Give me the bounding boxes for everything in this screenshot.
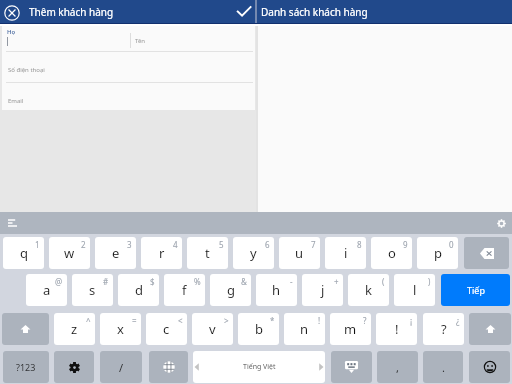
staticText: Danh sách khách hàng	[261, 5, 368, 19]
button[interactable]: Shift	[2, 313, 49, 345]
staticText: Thêm khách hàng	[29, 5, 114, 19]
staticText: l	[413, 281, 417, 299]
button[interactable]: g	[210, 274, 251, 306]
staticText: .	[442, 360, 445, 375]
button[interactable]: u	[279, 237, 320, 269]
button[interactable]: x	[100, 313, 141, 345]
button[interactable]: Clipboard	[2, 212, 24, 234]
button[interactable]: Save	[233, 1, 254, 22]
button[interactable]: Symbols	[3, 351, 49, 383]
staticText: ?	[441, 320, 447, 338]
button[interactable]: c	[146, 313, 187, 345]
button[interactable]: f	[164, 274, 205, 306]
staticText: ?123	[16, 361, 36, 373]
button[interactable]: j	[302, 274, 343, 306]
staticText: 5	[219, 239, 224, 250]
staticText: u	[295, 244, 304, 262]
staticText: a	[43, 281, 51, 299]
button[interactable]: a	[26, 274, 67, 306]
staticText: n	[300, 320, 309, 338]
staticText: 3	[127, 239, 132, 250]
staticText: )	[428, 276, 431, 287]
button[interactable]: Slash	[100, 351, 142, 383]
staticText: ¿	[456, 315, 460, 326]
staticText: ^	[86, 315, 91, 326]
staticText: Số điện thoại	[8, 66, 45, 74]
staticText: 1	[35, 239, 40, 250]
button[interactable]: p	[417, 237, 458, 269]
staticText: f	[182, 281, 187, 299]
staticText: ¡	[410, 315, 413, 326]
staticText: j	[321, 281, 325, 299]
button[interactable]: v	[192, 313, 233, 345]
staticText: /	[119, 360, 124, 375]
button[interactable]: h	[256, 274, 297, 306]
button[interactable]: Shift	[469, 313, 511, 345]
button[interactable]: l	[394, 274, 435, 306]
staticText: %	[194, 276, 201, 287]
staticText: v	[209, 320, 216, 338]
staticText: c	[163, 320, 170, 338]
button[interactable]: z	[54, 313, 95, 345]
button[interactable]: Keyboard settings	[54, 351, 94, 383]
staticText: (	[382, 276, 385, 287]
staticText: +	[334, 276, 339, 287]
staticText: ?	[363, 315, 367, 326]
staticText: @	[55, 276, 63, 287]
button[interactable]: !	[376, 313, 417, 345]
button[interactable]: w	[49, 237, 90, 269]
staticText: $	[150, 276, 155, 287]
staticText: w	[64, 244, 75, 262]
staticText: r	[159, 244, 165, 262]
button[interactable]: m	[330, 313, 371, 345]
button[interactable]: Emoji	[469, 351, 510, 383]
button[interactable]: r	[141, 237, 182, 269]
button[interactable]: y	[233, 237, 274, 269]
staticText: d	[135, 281, 143, 299]
button[interactable]: Space	[193, 351, 325, 383]
staticText: Email	[8, 97, 24, 105]
button[interactable]: Hide keyboard	[331, 351, 372, 383]
button[interactable]: Next	[441, 274, 510, 306]
staticText: ,	[396, 360, 399, 375]
staticText: 0	[449, 239, 454, 250]
staticText: z	[71, 320, 78, 338]
staticText: x	[117, 320, 124, 338]
button[interactable]: k	[348, 274, 389, 306]
staticText: k	[365, 281, 372, 299]
staticText: h	[272, 281, 281, 299]
button[interactable]: q	[3, 237, 44, 269]
button[interactable]: i	[325, 237, 366, 269]
staticText: 8	[357, 239, 362, 250]
button[interactable]: ?	[423, 313, 464, 345]
staticText: e	[112, 244, 120, 262]
staticText: t	[205, 244, 210, 262]
button[interactable]: n	[284, 313, 325, 345]
staticText: 9	[403, 239, 408, 250]
staticText: Họ	[7, 28, 16, 36]
staticText: <	[178, 315, 183, 326]
button[interactable]: d	[118, 274, 159, 306]
staticText: >	[224, 315, 229, 326]
staticText: m	[344, 320, 357, 338]
staticText: s	[89, 281, 96, 299]
button[interactable]: o	[371, 237, 412, 269]
button[interactable]: e	[95, 237, 136, 269]
button[interactable]: b	[238, 313, 279, 345]
staticText: !	[318, 315, 321, 326]
staticText: !	[395, 320, 399, 338]
staticText: Tên	[135, 37, 146, 45]
button[interactable]: t	[187, 237, 228, 269]
staticText: p	[434, 244, 442, 262]
button[interactable]: Period	[423, 351, 463, 383]
button[interactable]: Close	[2, 3, 22, 23]
staticText: b	[255, 320, 263, 338]
staticText: =	[132, 315, 137, 326]
staticText: #	[103, 276, 109, 287]
button[interactable]: Comma	[377, 351, 418, 383]
staticText: 4	[173, 239, 178, 250]
button[interactable]: s	[72, 274, 113, 306]
button[interactable]: Settings	[490, 212, 512, 234]
button[interactable]: Backspace	[464, 237, 509, 269]
button[interactable]: Change language	[149, 351, 188, 383]
